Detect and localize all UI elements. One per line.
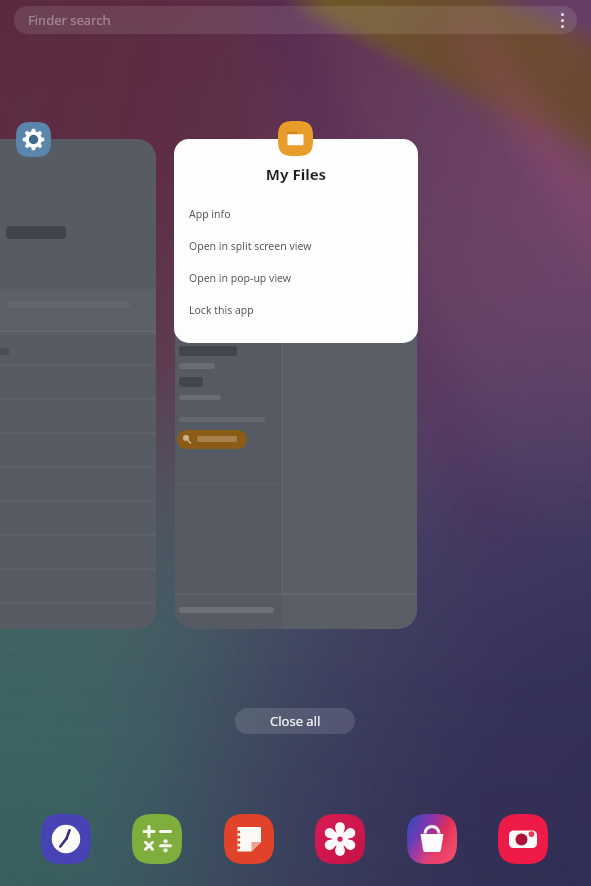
staticText: Finder search [28,11,111,29]
button[interactable]: Finder search [14,6,577,34]
button[interactable]: Samsung Notes [224,814,274,864]
staticText: Lock this app [189,303,254,317]
button[interactable] [0,139,156,629]
button[interactable]: Gallery [315,814,365,864]
staticText: My Files [174,164,418,184]
button[interactable]: Clock [41,814,91,864]
staticText: Open in pop-up view [189,271,292,285]
button[interactable]: Lock this app [174,294,418,326]
button[interactable]: Camera [498,814,548,864]
button[interactable]: App info [174,198,418,230]
button[interactable]: Open in split screen view [174,230,418,262]
staticText: App info [189,207,231,221]
button[interactable]: Galaxy Store [407,814,457,864]
button[interactable]: My Files [278,121,313,156]
staticText: Open in split screen view [189,239,312,253]
button[interactable]: Calculator [132,814,182,864]
staticText: Close all [270,712,321,730]
button[interactable]: Close all [235,708,355,734]
button[interactable] [175,139,417,629]
button[interactable]: Open in pop-up view [174,262,418,294]
button[interactable]: Settings [16,122,51,157]
